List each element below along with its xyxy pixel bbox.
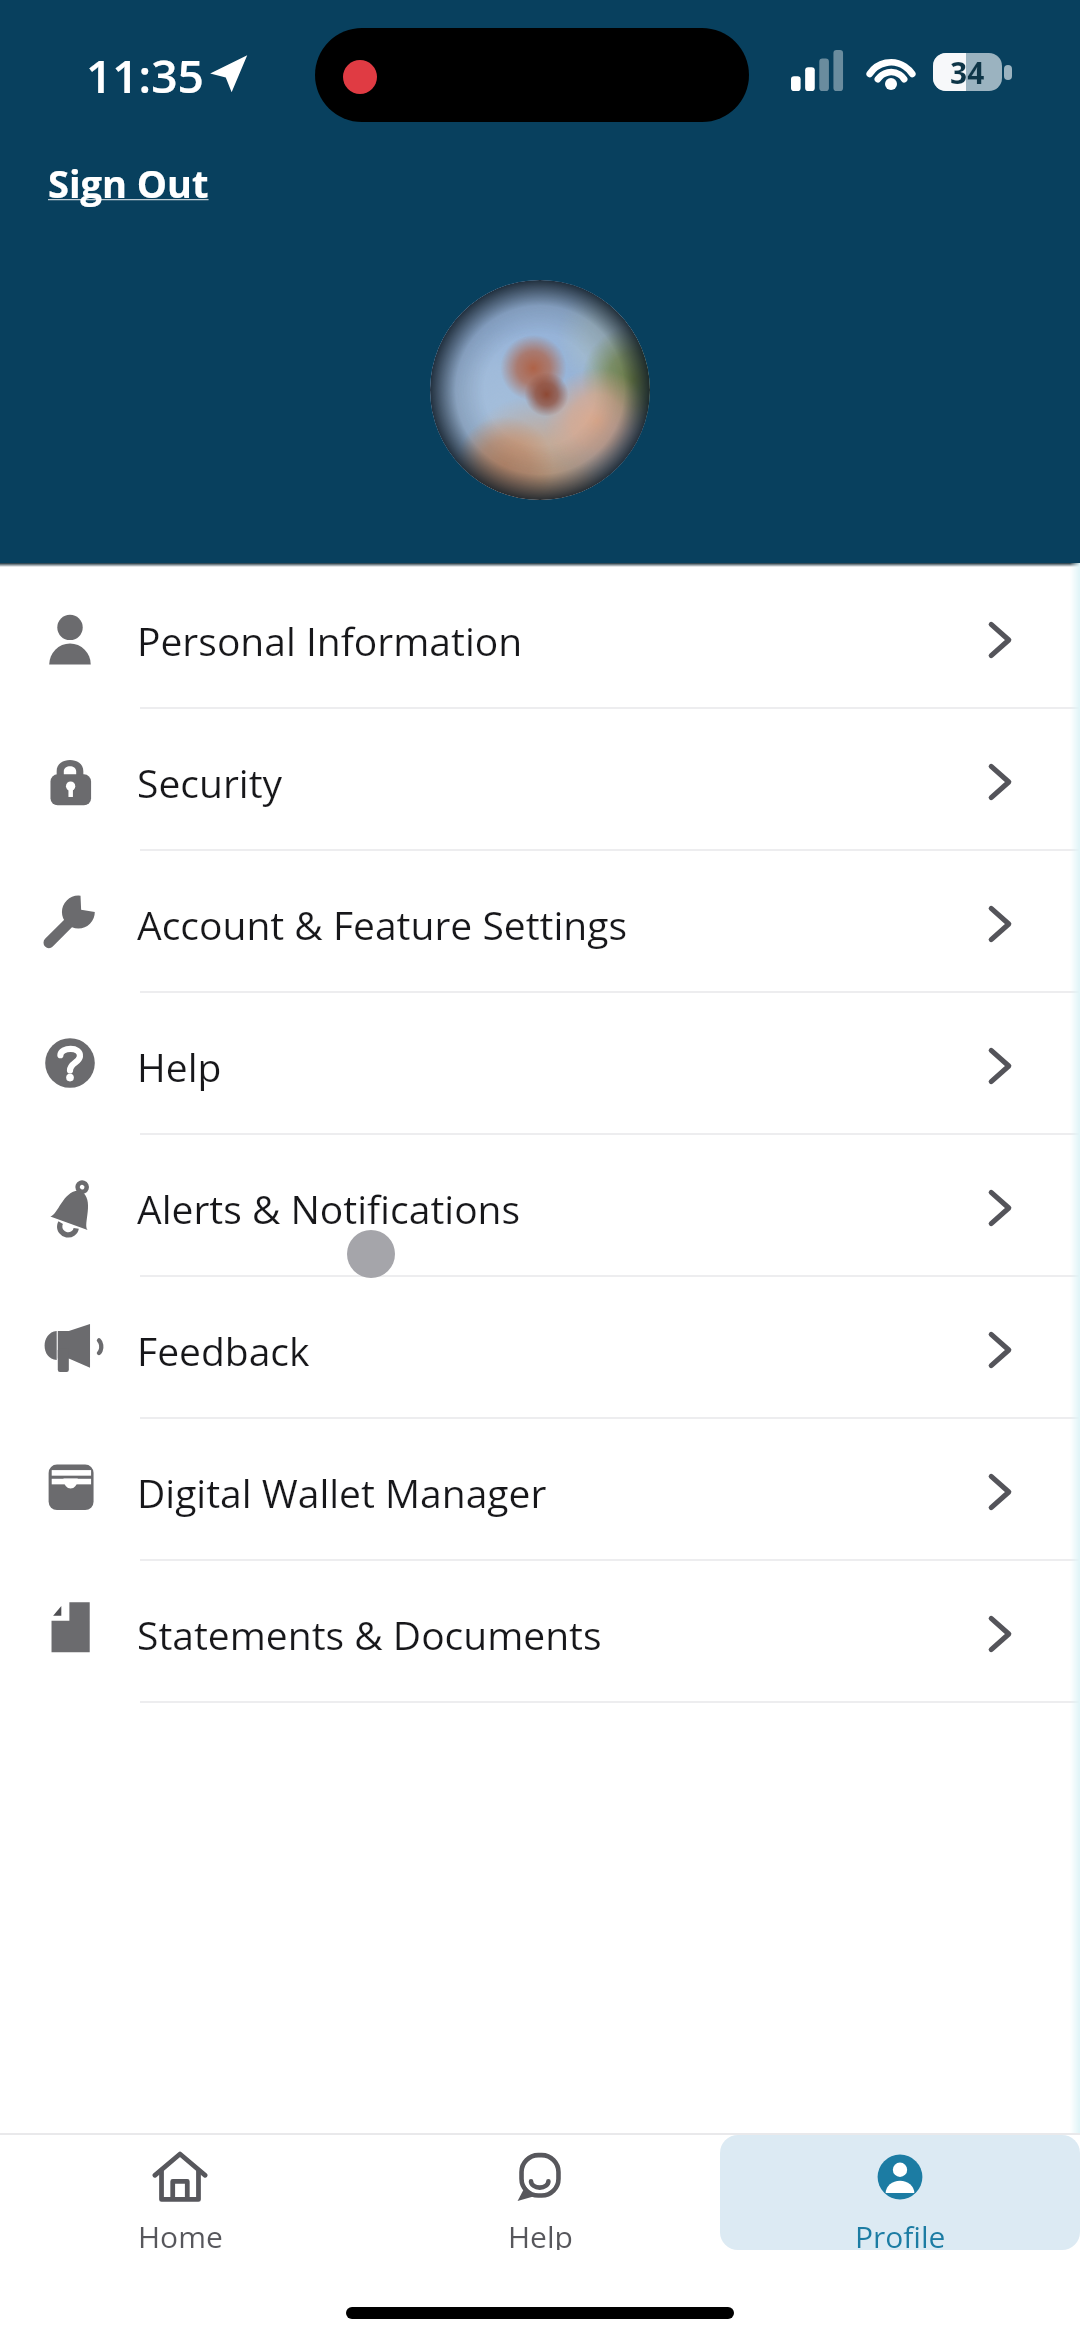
button[interactable]: Help xyxy=(360,2135,720,2250)
button[interactable]: Account & Feature Settings xyxy=(0,851,1080,991)
button[interactable]: Feedback xyxy=(0,1277,1080,1417)
button[interactable]: Alerts & Notifications xyxy=(0,1135,1080,1275)
staticText: Personal Information xyxy=(137,614,975,667)
staticText: 11:35 xyxy=(86,44,204,107)
button[interactable]: Sign Out xyxy=(48,157,209,209)
staticText: Profile xyxy=(855,2216,946,2250)
button[interactable]: Statements & Documents xyxy=(0,1561,1080,1701)
button[interactable]: Home xyxy=(0,2135,360,2250)
staticText: Feedback xyxy=(137,1324,975,1377)
staticText: Home xyxy=(138,2216,223,2250)
button[interactable]: Help xyxy=(0,993,1080,1133)
staticText: Statements & Documents xyxy=(137,1608,975,1661)
staticText: Security xyxy=(137,756,975,809)
staticText: Digital Wallet Manager xyxy=(137,1466,975,1519)
staticText: Sign Out xyxy=(48,157,209,209)
button[interactable]: Profile xyxy=(720,2135,1080,2250)
staticText: Account & Feature Settings xyxy=(137,898,975,951)
button[interactable]: Digital Wallet Manager xyxy=(0,1419,1080,1559)
button[interactable]: Profile photo xyxy=(430,280,650,500)
staticText: Help xyxy=(137,1040,975,1093)
staticText: 34 xyxy=(950,53,985,90)
staticText: Alerts & Notifications xyxy=(137,1182,975,1235)
button[interactable]: Security xyxy=(0,709,1080,849)
button[interactable]: Personal Information xyxy=(0,567,1080,707)
staticText: Help xyxy=(508,2216,573,2250)
